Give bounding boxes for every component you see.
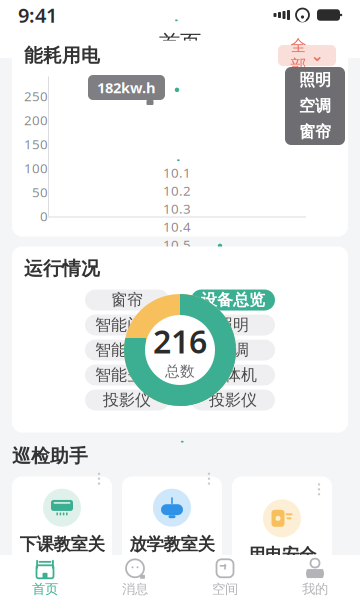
staticText: 150 xyxy=(24,135,48,153)
staticText: 巡检助手 xyxy=(12,444,88,467)
button[interactable]: 用电安全 xyxy=(232,476,332,572)
staticText: 10.1 xyxy=(163,164,191,181)
button[interactable]: 投影仪 xyxy=(191,389,275,410)
staticText: 智能门锁 xyxy=(95,315,159,335)
staticText: 投影仪 xyxy=(209,390,257,410)
staticText: 100 xyxy=(24,159,48,177)
staticText: 10.5 xyxy=(163,236,191,253)
button[interactable]: 照明 xyxy=(285,67,345,93)
staticText: 10.2 xyxy=(163,182,191,199)
button[interactable]: 首页 xyxy=(0,555,90,599)
button[interactable]: 空调 xyxy=(191,339,275,360)
staticText: 消息 xyxy=(122,581,148,597)
button[interactable]: 智能空开 xyxy=(85,364,169,385)
button[interactable]: 照明 xyxy=(191,314,275,335)
button[interactable]: 放学教室关灯 xyxy=(122,476,222,572)
button[interactable]: 消息 xyxy=(90,555,180,599)
staticText: 216 xyxy=(153,320,207,362)
staticText: 窗帘 xyxy=(299,122,331,142)
button[interactable]: 投影仪 xyxy=(85,389,169,410)
button[interactable]: 更多操作 xyxy=(310,479,328,499)
button[interactable]: 空间 xyxy=(180,555,270,599)
staticText: 运行情况 xyxy=(24,257,100,280)
staticText: 投影仪 xyxy=(103,390,151,410)
button[interactable]: 智能插座 xyxy=(85,339,169,360)
staticText: 10.4 xyxy=(163,218,191,235)
staticText: 首页 xyxy=(32,581,58,597)
staticText: 我的 xyxy=(302,581,328,597)
button[interactable]: 窗帘 xyxy=(285,119,345,145)
button[interactable]: 我的 xyxy=(270,555,360,599)
staticText: 0 xyxy=(40,207,48,225)
staticText: 放学教室关灯 xyxy=(129,534,214,576)
staticText: ⌄ xyxy=(310,46,323,65)
staticText: 能耗用电 xyxy=(24,44,100,67)
staticText: 窗帘 xyxy=(111,290,143,310)
staticText: 用电安全 xyxy=(248,544,316,566)
button[interactable]: 设备总览 xyxy=(191,289,275,310)
button[interactable]: 智能门锁 xyxy=(85,314,169,335)
staticText: 照明 xyxy=(299,70,331,90)
staticText: 一体机 xyxy=(209,365,257,385)
staticText: 9:41 xyxy=(18,2,57,28)
staticText: 照明 xyxy=(217,315,249,335)
button[interactable]: 空调 xyxy=(285,93,345,119)
staticText: 250 xyxy=(24,87,48,105)
button[interactable]: 更多操作 xyxy=(200,469,218,489)
staticText: 智能空开 xyxy=(95,365,159,385)
staticText: 200 xyxy=(24,111,48,129)
button[interactable]: 一体机 xyxy=(191,364,275,385)
staticText: 空调 xyxy=(217,340,249,360)
button[interactable]: 全部 xyxy=(278,45,336,66)
staticText: 空调 xyxy=(299,96,331,116)
staticText: 首页 xyxy=(159,30,201,56)
staticText: 182kw.h xyxy=(97,78,156,97)
button[interactable]: 窗帘 xyxy=(85,289,169,310)
staticText: 总数 xyxy=(165,362,195,380)
staticText: 空间 xyxy=(212,581,238,597)
staticText: 50 xyxy=(32,183,48,201)
staticText: 智能插座 xyxy=(95,340,159,360)
staticText: 全部 xyxy=(290,36,306,75)
staticText: 10.3 xyxy=(163,200,191,217)
staticText: 设备总览 xyxy=(201,290,265,310)
staticText: 下课教室关空调 xyxy=(19,534,104,576)
button[interactable]: 更多操作 xyxy=(90,469,108,489)
button[interactable]: 下课教室关空调 xyxy=(12,476,112,572)
